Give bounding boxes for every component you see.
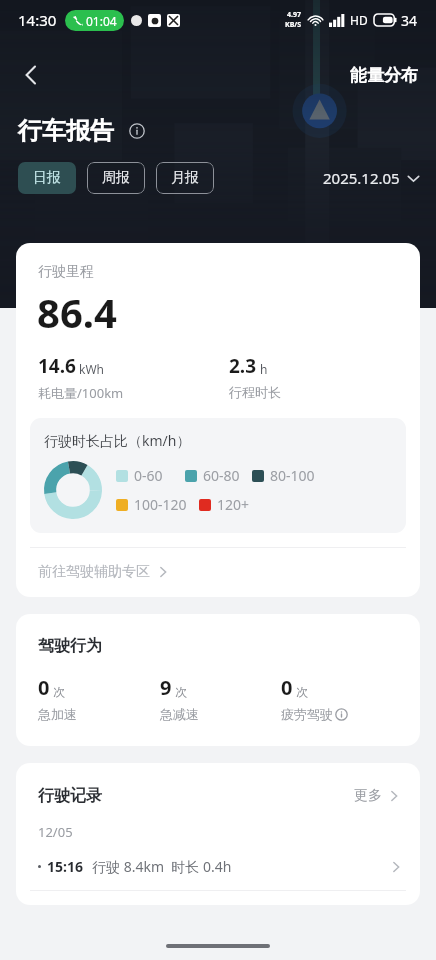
button[interactable]: Back: [8, 52, 54, 98]
staticText: 月报: [171, 169, 199, 187]
staticText: 能量分布: [350, 65, 418, 86]
staticText: 次: [53, 684, 65, 699]
staticText: 0: [38, 674, 50, 701]
staticText: KB/S: [285, 20, 302, 30]
staticText: 60-80: [203, 466, 240, 485]
button[interactable]: Info: [123, 117, 151, 145]
staticText: 34: [401, 11, 418, 30]
staticText: 急减速: [160, 706, 199, 722]
staticText: 12/05: [38, 823, 73, 841]
staticText: 100-120: [134, 495, 187, 514]
button[interactable]: 日报: [18, 162, 76, 194]
staticText: 4.97: [287, 10, 301, 20]
staticText: 9: [160, 674, 172, 701]
staticText: 14.6: [38, 353, 76, 379]
staticText: 行驶 8.4km 时长 0.4h: [92, 857, 232, 876]
staticText: 80-100: [270, 466, 315, 485]
staticText: 次: [175, 684, 187, 699]
staticText: 120+: [217, 495, 250, 514]
staticText: 次: [296, 684, 308, 699]
staticText: 86.4: [37, 285, 117, 339]
staticText: 行驶里程: [38, 263, 94, 281]
button[interactable]: 能量分布: [332, 59, 436, 92]
staticText: 耗电量/100km: [38, 384, 124, 402]
staticText: 行程时长: [229, 384, 281, 400]
staticText: 2.3: [229, 353, 257, 379]
staticText: 15:16: [47, 857, 83, 876]
button[interactable]: 月报: [156, 162, 214, 194]
staticText: kWh: [79, 361, 104, 377]
staticText: 疲劳驾驶: [281, 706, 333, 722]
staticText: 周报: [102, 169, 130, 187]
button[interactable]: 更多: [352, 783, 402, 809]
staticText: 更多: [354, 787, 382, 805]
staticText: 2025.12.05: [323, 168, 400, 188]
staticText: 行驶记录: [38, 786, 102, 806]
button[interactable]: 周报: [87, 162, 145, 194]
staticText: 行车报告: [18, 116, 114, 146]
staticText: 日报: [33, 169, 61, 187]
button[interactable]: 2025.12.05: [321, 162, 422, 194]
staticText: HD: [350, 12, 368, 28]
staticText: 驾驶行为: [38, 636, 102, 656]
staticText: 14:30: [18, 10, 57, 30]
button[interactable]: 15:16: [16, 857, 420, 890]
staticText: h: [260, 361, 268, 377]
staticText: 行驶时长占比（km/h）: [44, 431, 191, 450]
staticText: 01:04: [86, 13, 117, 29]
staticText: 前往驾驶辅助专区: [38, 563, 150, 581]
staticText: 0-60: [134, 466, 163, 485]
button[interactable]: 前往驾驶辅助专区: [16, 548, 420, 597]
staticText: 0: [281, 674, 293, 701]
staticText: 急加速: [38, 706, 77, 722]
